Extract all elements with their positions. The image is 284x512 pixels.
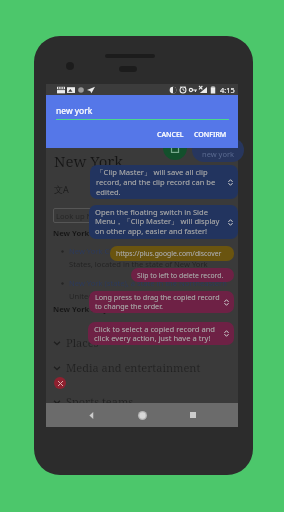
button[interactable]: https://plus.google.com/discover [110,246,234,261]
staticText: 「Clip Master」 will save all clip record,… [96,167,225,198]
staticText: New York City, [69,246,120,256]
staticText: New York (state), a state in the Northea… [69,278,227,288]
button[interactable]: Slip to left to delete record. [131,268,234,282]
button[interactable]: Media and entertainment [52,360,201,375]
staticText: New York [54,151,124,171]
button[interactable]: Places [52,335,99,350]
staticText: United States [69,291,117,301]
staticText: Click to select a copied record and clic… [94,324,221,344]
staticText: Slip to left to delete record. [137,271,224,280]
button[interactable]: Look up New York [53,208,133,223]
staticText: Open the floating switch in Side Menu，「C… [95,207,225,237]
button[interactable]: 「Clip Master」 will save all clip record,… [90,165,238,199]
staticText: new york [56,105,93,117]
button[interactable]: Back [85,409,97,421]
button[interactable]: CONFIRM [192,128,229,142]
staticText: Look up New York [56,211,121,221]
button[interactable]: Recents [187,409,199,421]
staticText: https://plus.google.com/discover [116,249,222,258]
staticText: States, located in the state of New York [69,259,208,269]
button[interactable]: Clip Master [163,136,187,160]
staticText: new york [202,149,235,159]
staticText: Media and entertainment [66,360,201,375]
staticText: Sports teams [66,394,134,409]
button[interactable]: Sports teams [52,394,134,409]
staticText: CONFIRM [194,130,227,140]
button[interactable]: CANCEL [155,128,186,142]
staticText: 4:15 [220,85,235,95]
button[interactable]: Click to select a copied record and clic… [88,322,234,345]
button[interactable]: Home [136,409,148,421]
staticText: CANCEL [157,130,184,140]
staticText: New York may also refer to: [53,304,158,314]
staticText: 文A [54,183,69,195]
staticText: New York may refer to: [53,228,141,238]
button[interactable]: Long press to drag the copied record to … [89,291,234,313]
staticText: Long press to drag the copied record to … [95,292,221,312]
staticText: Places [66,335,99,350]
button[interactable]: Open the floating switch in Side Menu，「C… [89,205,238,239]
